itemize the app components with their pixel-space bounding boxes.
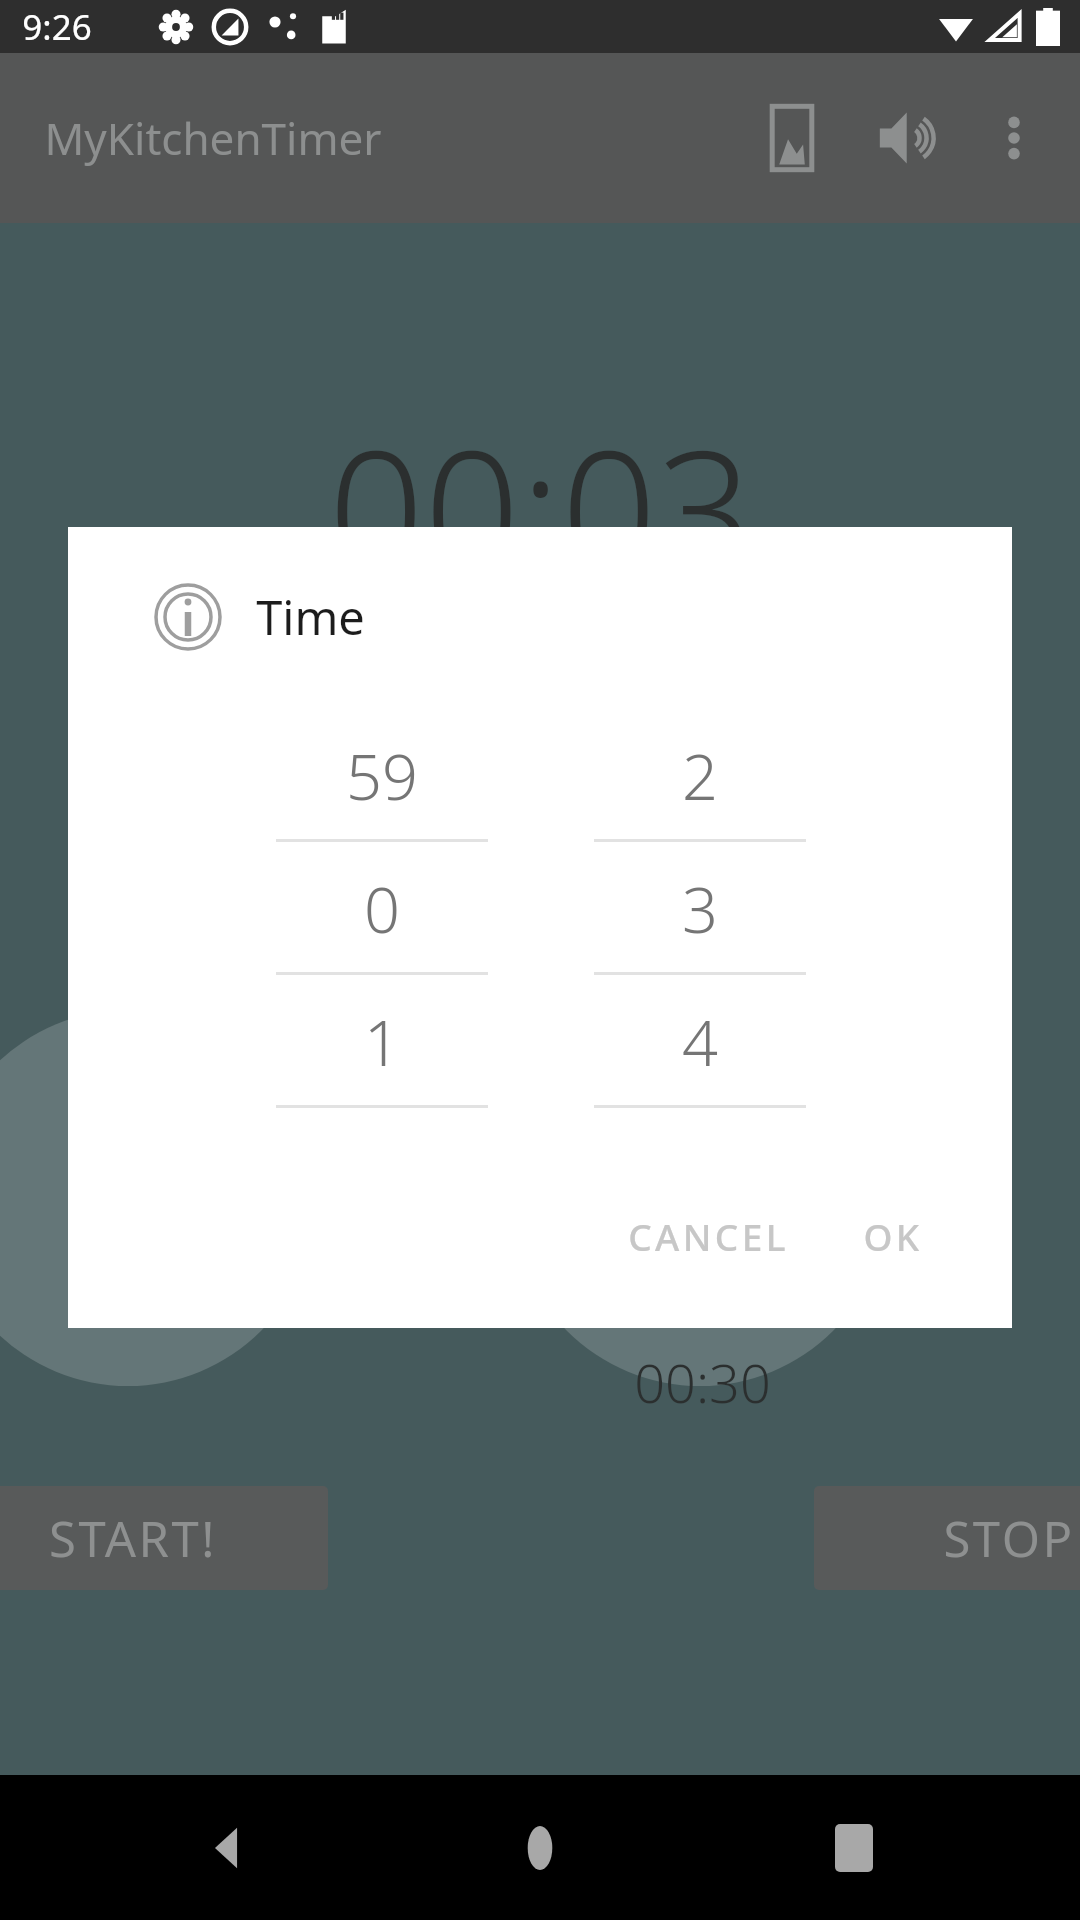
staticText: 0 <box>364 866 400 952</box>
staticText: 9:26 <box>22 3 92 51</box>
button[interactable]: 4 <box>594 975 806 1108</box>
staticText: Time <box>256 585 365 649</box>
staticText: MyKitchenTimer <box>44 108 382 168</box>
staticText: 3 <box>682 866 718 952</box>
button[interactable]: 1 <box>276 975 488 1108</box>
button[interactable]: 59 <box>276 709 488 842</box>
staticText: 4 <box>682 999 718 1085</box>
button[interactable]: 2 <box>594 709 806 842</box>
staticText: 1 <box>364 999 400 1085</box>
staticText: 00:30 <box>634 1345 771 1419</box>
button[interactable]: Choose image <box>734 80 850 196</box>
button[interactable]: Home <box>484 1792 596 1904</box>
staticText: 00:03 <box>328 392 753 621</box>
button[interactable]: START! <box>0 1486 328 1590</box>
button[interactable]: Back <box>170 1792 282 1904</box>
staticText: 59 <box>346 733 418 819</box>
button[interactable]: STOP <box>814 1486 1080 1590</box>
staticText: STOP <box>943 1505 1075 1572</box>
button[interactable]: CANCEL <box>628 1192 789 1280</box>
staticText: CANCEL <box>628 1211 789 1261</box>
button[interactable]: Recent apps <box>798 1792 910 1904</box>
button[interactable]: 0 <box>276 842 488 975</box>
button[interactable]: More options <box>966 90 1062 186</box>
button[interactable]: OK <box>863 1192 923 1280</box>
button[interactable]: Sound settings <box>850 80 966 196</box>
button[interactable]: 3 <box>594 842 806 975</box>
staticText: START! <box>49 1505 217 1572</box>
staticText: 2 <box>682 733 718 819</box>
staticText: OK <box>863 1211 923 1261</box>
